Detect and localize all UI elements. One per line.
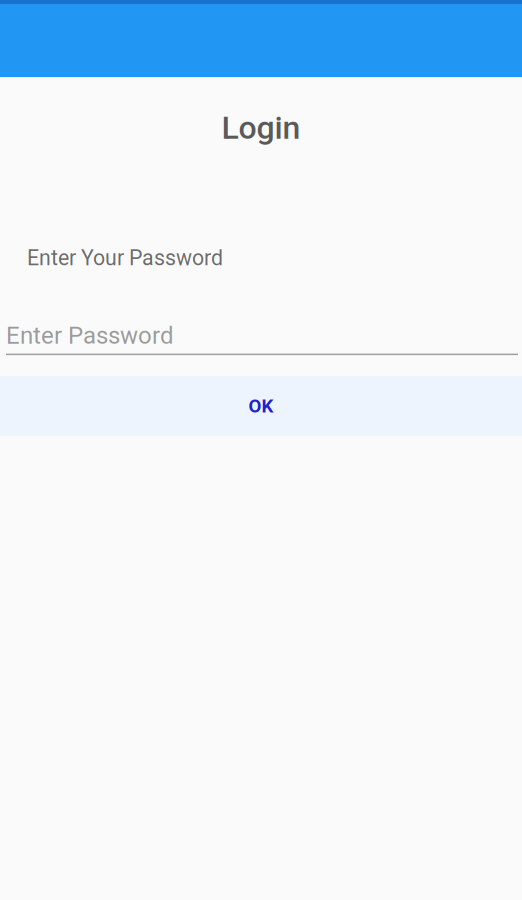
- button[interactable]: OK: [0, 376, 522, 436]
- staticText: Enter Password: [6, 321, 174, 350]
- staticText: Enter Your Password: [27, 245, 223, 270]
- staticText: OK: [248, 395, 273, 417]
- staticText: Login: [221, 109, 300, 146]
- button[interactable]: Enter Password: [0, 321, 522, 355]
